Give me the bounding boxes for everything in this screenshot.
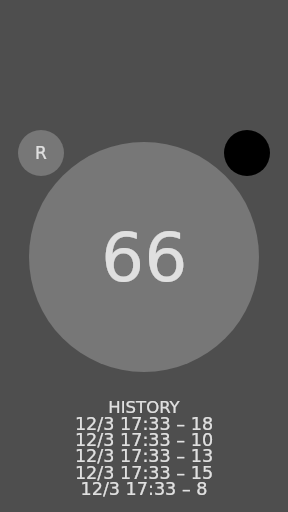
staticText: 12/3 17:33 – 15 bbox=[0, 463, 288, 483]
button[interactable]: Counter colour bbox=[224, 130, 270, 176]
staticText: 12/3 17:33 – 8 bbox=[0, 479, 288, 499]
staticText: HISTORY bbox=[0, 398, 288, 417]
staticText: 12/3 17:33 – 18 bbox=[0, 414, 288, 434]
button[interactable]: R bbox=[18, 130, 64, 176]
staticText: R bbox=[35, 143, 47, 163]
staticText: 12/3 17:33 – 10 bbox=[0, 430, 288, 450]
staticText: 12/3 17:33 – 13 bbox=[0, 446, 288, 466]
button[interactable]: Increment counter bbox=[29, 142, 259, 372]
staticText: 66 bbox=[101, 218, 188, 297]
